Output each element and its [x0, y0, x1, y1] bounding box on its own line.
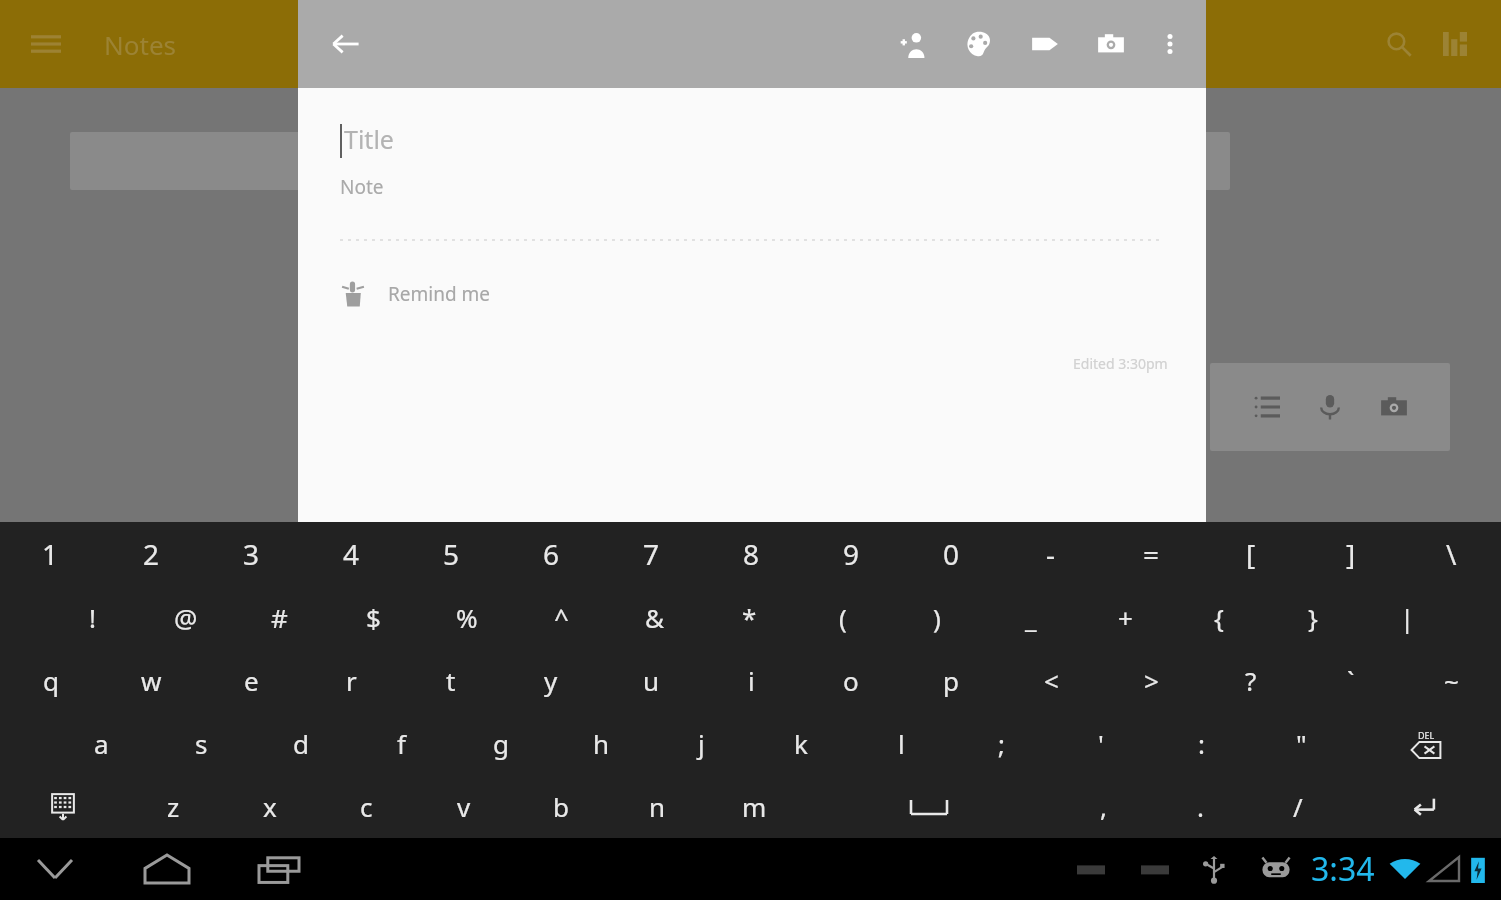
button[interactable]: * — [702, 586, 796, 649]
staticText: ' — [1098, 726, 1104, 761]
button[interactable]: Recent apps — [248, 838, 310, 900]
button[interactable]: ] — [1301, 522, 1401, 586]
button[interactable]: Note — [340, 174, 1160, 214]
button[interactable]: p — [901, 649, 1001, 712]
staticText: l — [898, 726, 905, 761]
button[interactable]: 4 — [301, 522, 401, 586]
button[interactable]: o — [801, 649, 901, 712]
button[interactable]: t — [401, 649, 501, 712]
button[interactable]: < — [1001, 649, 1101, 712]
button[interactable]: Delete — [1351, 712, 1501, 775]
button[interactable]: : — [1151, 712, 1251, 775]
button[interactable]: More options — [1144, 18, 1196, 70]
button[interactable]: 9 — [801, 522, 901, 586]
button[interactable]: Add collaborator — [880, 11, 946, 77]
button[interactable]: h — [551, 712, 651, 775]
button[interactable]: Switch keyboard — [0, 775, 125, 838]
button[interactable]: c — [318, 775, 415, 838]
button[interactable]: Remind me — [340, 270, 491, 318]
button[interactable]: ( — [796, 586, 890, 649]
button[interactable]: Enter — [1346, 775, 1501, 838]
button[interactable]: Open navigation menu — [18, 16, 74, 72]
button[interactable]: Space — [803, 775, 1055, 838]
button[interactable]: ) — [890, 586, 984, 649]
button[interactable]: w — [101, 649, 201, 712]
button[interactable]: ' — [1051, 712, 1151, 775]
button[interactable]: = — [1101, 522, 1201, 586]
button[interactable]: New photo note — [1371, 384, 1417, 430]
button[interactable]: $ — [326, 586, 420, 649]
button[interactable]: New list — [1244, 384, 1290, 430]
staticText: i — [748, 663, 755, 698]
button[interactable] — [70, 132, 1230, 190]
button[interactable]: v — [415, 775, 512, 838]
button[interactable]: i — [701, 649, 801, 712]
staticText: ? — [1245, 663, 1257, 698]
button[interactable]: & — [608, 586, 702, 649]
button[interactable]: % — [420, 586, 514, 649]
button[interactable]: z — [125, 775, 221, 838]
staticText: Edited 3:30pm — [1073, 354, 1168, 373]
button[interactable]: Home — [136, 838, 198, 900]
button[interactable]: ^ — [514, 586, 608, 649]
button[interactable]: / — [1249, 775, 1346, 838]
button[interactable]: Change color — [946, 11, 1012, 77]
button[interactable]: - — [1001, 522, 1101, 586]
button[interactable]: j — [651, 712, 751, 775]
button[interactable]: " — [1251, 712, 1351, 775]
button[interactable]: 2 — [101, 522, 201, 586]
button[interactable]: Search — [1371, 16, 1427, 72]
button[interactable]: ! — [46, 586, 139, 649]
button[interactable]: Change view — [1427, 16, 1483, 72]
button[interactable]: f — [351, 712, 451, 775]
button[interactable]: 1 — [0, 522, 101, 586]
staticText: e — [244, 663, 259, 698]
button[interactable]: . — [1152, 775, 1249, 838]
button[interactable]: g — [451, 712, 551, 775]
button[interactable]: d — [251, 712, 351, 775]
staticText: t — [446, 663, 456, 698]
button[interactable]: | — [1360, 586, 1454, 649]
button[interactable]: _ — [984, 586, 1078, 649]
button[interactable]: 8 — [701, 522, 801, 586]
button[interactable]: New voice note — [1307, 384, 1353, 430]
button[interactable]: Add photo — [1078, 11, 1144, 77]
button[interactable]: Title — [340, 118, 1160, 168]
staticText: | — [1400, 600, 1415, 635]
button[interactable]: s — [151, 712, 251, 775]
button[interactable]: k — [751, 712, 851, 775]
staticText: f — [397, 726, 406, 761]
button[interactable]: e — [201, 649, 301, 712]
button[interactable]: l — [851, 712, 951, 775]
button[interactable]: y — [501, 649, 601, 712]
button[interactable]: [ — [1201, 522, 1301, 586]
button[interactable]: ` — [1301, 649, 1401, 712]
button[interactable]: Back — [318, 16, 374, 72]
button[interactable]: # — [232, 586, 326, 649]
button[interactable]: 6 — [501, 522, 601, 586]
button[interactable]: > — [1101, 649, 1201, 712]
button[interactable]: , — [1055, 775, 1152, 838]
button[interactable]: q — [0, 649, 101, 712]
button[interactable]: { — [1172, 586, 1266, 649]
button[interactable]: Add label — [1012, 11, 1078, 77]
button[interactable]: } — [1266, 586, 1360, 649]
button[interactable]: Hide keyboard — [24, 838, 86, 900]
button[interactable]: 7 — [601, 522, 701, 586]
button[interactable]: + — [1078, 586, 1172, 649]
button[interactable]: n — [609, 775, 706, 838]
button[interactable]: \ — [1401, 522, 1501, 586]
button[interactable]: b — [512, 775, 609, 838]
button[interactable]: u — [601, 649, 701, 712]
button[interactable]: x — [221, 775, 318, 838]
button[interactable]: ? — [1201, 649, 1301, 712]
button[interactable]: a — [51, 712, 151, 775]
button[interactable]: @ — [139, 586, 232, 649]
button[interactable]: 3 — [201, 522, 301, 586]
button[interactable]: 5 — [401, 522, 501, 586]
button[interactable]: 0 — [901, 522, 1001, 586]
button[interactable]: m — [706, 775, 803, 838]
button[interactable]: ; — [951, 712, 1051, 775]
button[interactable]: r — [301, 649, 401, 712]
button[interactable]: ~ — [1401, 649, 1501, 712]
